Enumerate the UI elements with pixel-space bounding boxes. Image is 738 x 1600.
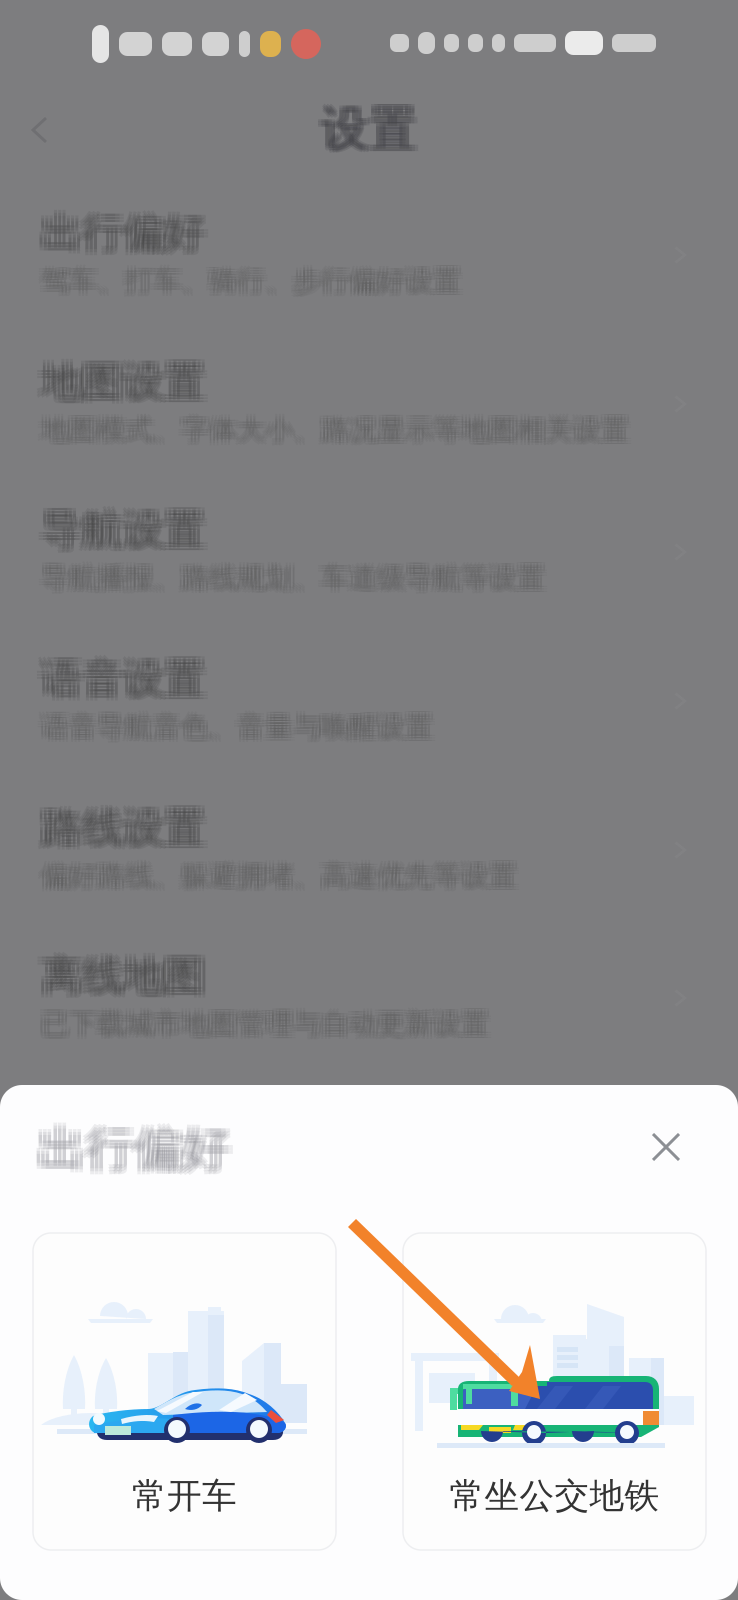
staticText: 偏好路线、躲避拥堵、高速优先等设置 xyxy=(41,859,517,893)
staticText: 离线地图 xyxy=(41,951,205,1001)
staticText: 离线地图 xyxy=(37,951,201,1001)
staticText: 路线设置 xyxy=(37,800,201,850)
staticText: 设置 xyxy=(318,102,414,161)
staticText: 离线地图 xyxy=(41,954,205,1004)
button[interactable]: Close xyxy=(640,1121,692,1173)
staticText: 路线设置 xyxy=(41,803,205,853)
staticText: 驾车、打车、骑行、步行偏好设置 xyxy=(41,266,461,301)
staticText: 出行偏好 xyxy=(41,208,205,258)
staticText: 出行偏好 xyxy=(42,1116,234,1175)
staticText: 地图设置 xyxy=(41,354,205,404)
staticText: 已下载城市地图管理与自动更新设置 xyxy=(37,1007,485,1041)
staticText: 出行偏好 xyxy=(34,1119,226,1178)
staticText: 出行偏好 xyxy=(45,208,209,258)
staticText: 语音导航音色、音量与唤醒设置 xyxy=(41,712,433,747)
staticText: 语音导航音色、音量与唤醒设置 xyxy=(37,712,429,747)
staticText: 路线设置 xyxy=(41,800,205,850)
button[interactable]: 路线设置 xyxy=(0,776,738,924)
staticText: 地图模式、字体大小、路况显示等地图相关设置 xyxy=(37,410,625,445)
staticText: 偏好路线、躲避拥堵、高速优先等设置 xyxy=(37,856,513,891)
staticText: 导航设置 xyxy=(37,505,201,555)
staticText: 路线设置 xyxy=(37,803,201,853)
staticText: 地图模式、字体大小、路况显示等地图相关设置 xyxy=(41,410,629,445)
staticText: 已下载城市地图管理与自动更新设置 xyxy=(37,1009,485,1044)
staticText: 导航播报、路线规划、车道级导航等设置 xyxy=(41,558,545,593)
staticText: 设置 xyxy=(318,99,414,158)
staticText: 常开车 xyxy=(132,1475,237,1517)
staticText: 导航播报、路线规划、车道级导航等设置 xyxy=(37,561,541,595)
staticText: 语音导航音色、音量与唤醒设置 xyxy=(45,710,437,744)
staticText: 导航播报、路线规划、车道级导航等设置 xyxy=(45,561,549,595)
staticText: 导航设置 xyxy=(45,505,209,555)
staticText: 导航播报、路线规划、车道级导航等设置 xyxy=(41,563,545,598)
staticText: 语音导航音色、音量与唤醒设置 xyxy=(45,712,437,747)
staticText: 驾车、打车、骑行、步行偏好设置 xyxy=(45,264,465,298)
staticText: 地图设置 xyxy=(45,357,209,407)
staticText: 设置 xyxy=(318,97,414,156)
staticText: 地图模式、字体大小、路况显示等地图相关设置 xyxy=(45,415,633,450)
staticText: 导航播报、路线规划、车道级导航等设置 xyxy=(45,563,549,598)
staticText: 驾车、打车、骑行、步行偏好设置 xyxy=(37,264,457,298)
staticText: 语音导航音色、音量与唤醒设置 xyxy=(37,710,429,744)
staticText: 离线地图 xyxy=(41,948,205,998)
staticText: 已下载城市地图管理与自动更新设置 xyxy=(41,1009,489,1044)
staticText: 导航设置 xyxy=(37,508,201,558)
staticText: 出行偏好 xyxy=(37,211,201,261)
button[interactable]: 出行偏好 xyxy=(0,181,738,329)
staticText: 路线设置 xyxy=(45,806,209,856)
staticText: 路线设置 xyxy=(41,806,205,856)
staticText: 离线地图 xyxy=(37,948,201,998)
staticText: 语音设置 xyxy=(37,654,201,704)
button[interactable]: 常开车 xyxy=(33,1233,336,1550)
staticText: 偏好路线、躲避拥堵、高速优先等设置 xyxy=(45,856,521,891)
button[interactable]: 语音设置 xyxy=(0,627,738,775)
staticText: 地图模式、字体大小、路况显示等地图相关设置 xyxy=(45,410,633,445)
staticText: 语音设置 xyxy=(37,657,201,707)
staticText: 导航播报、路线规划、车道级导航等设置 xyxy=(37,563,541,598)
staticText: 已下载城市地图管理与自动更新设置 xyxy=(37,1004,485,1039)
staticText: 导航播报、路线规划、车道级导航等设置 xyxy=(45,558,549,593)
staticText: 驾车、打车、骑行、步行偏好设置 xyxy=(41,261,461,296)
staticText: 出行偏好 xyxy=(34,1123,226,1182)
staticText: 已下载城市地图管理与自动更新设置 xyxy=(45,1009,493,1044)
staticText: 导航设置 xyxy=(37,502,201,552)
staticText: 出行偏好 xyxy=(45,205,209,255)
staticText: 偏好路线、躲避拥堵、高速优先等设置 xyxy=(37,861,513,896)
staticText: 驾车、打车、骑行、步行偏好设置 xyxy=(41,264,461,298)
staticText: 地图模式、字体大小、路况显示等地图相关设置 xyxy=(45,413,633,447)
staticText: 导航设置 xyxy=(45,502,209,552)
staticText: 地图设置 xyxy=(41,360,205,410)
staticText: 驾车、打车、骑行、步行偏好设置 xyxy=(37,266,457,301)
staticText: 出行偏好 xyxy=(37,205,201,255)
staticText: 偏好路线、躲避拥堵、高速优先等设置 xyxy=(41,856,517,891)
button[interactable]: 常坐公交地铁 xyxy=(403,1233,706,1550)
staticText: 语音设置 xyxy=(37,651,201,701)
staticText: 设置 xyxy=(321,102,417,161)
button[interactable]: 导航设置 xyxy=(0,478,738,626)
staticText: 语音设置 xyxy=(41,651,205,701)
staticText: 出行偏好 xyxy=(42,1119,234,1178)
staticText: 路线设置 xyxy=(37,806,201,856)
staticText: 偏好路线、躲避拥堵、高速优先等设置 xyxy=(45,861,521,896)
staticText: 出行偏好 xyxy=(41,211,205,261)
staticText: 路线设置 xyxy=(45,800,209,850)
staticText: 地图设置 xyxy=(37,357,201,407)
staticText: 语音导航音色、音量与唤醒设置 xyxy=(41,707,433,742)
staticText: 地图模式、字体大小、路况显示等地图相关设置 xyxy=(37,413,625,447)
staticText: 出行偏好 xyxy=(38,1116,230,1175)
staticText: 导航播报、路线规划、车道级导航等设置 xyxy=(41,561,545,595)
button[interactable]: 离线地图 xyxy=(0,924,738,1072)
staticText: 已下载城市地图管理与自动更新设置 xyxy=(45,1007,493,1041)
staticText: 地图设置 xyxy=(37,360,201,410)
staticText: 地图设置 xyxy=(37,354,201,404)
staticText: 地图模式、字体大小、路况显示等地图相关设置 xyxy=(41,413,629,447)
staticText: 地图模式、字体大小、路况显示等地图相关设置 xyxy=(37,415,625,450)
staticText: 地图设置 xyxy=(41,357,205,407)
staticText: 设置 xyxy=(321,97,417,156)
staticText: 设置 xyxy=(324,102,420,161)
staticText: 已下载城市地图管理与自动更新设置 xyxy=(41,1007,489,1041)
staticText: 离线地图 xyxy=(45,951,209,1001)
button[interactable]: 地图设置 xyxy=(0,330,738,478)
staticText: 偏好路线、躲避拥堵、高速优先等设置 xyxy=(37,859,513,893)
